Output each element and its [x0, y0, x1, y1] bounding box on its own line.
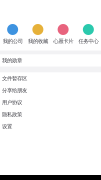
button[interactable]: 我的公司	[0, 24, 25, 45]
staticText: 我的收藏	[28, 38, 48, 45]
staticText: 心愿卡片	[53, 38, 73, 45]
staticText: 分享给朋友	[2, 87, 27, 94]
staticText: 我的勋章	[2, 57, 22, 64]
button[interactable]: 用户协议	[0, 97, 101, 109]
staticText: 文件暂存区	[2, 75, 27, 82]
button[interactable]: 任务中心	[76, 24, 101, 45]
staticText: 我的公司	[3, 38, 23, 45]
staticText: 用户协议	[2, 99, 22, 106]
button[interactable]: 我的勋章	[0, 55, 101, 67]
button[interactable]: 心愿卡片	[50, 24, 76, 45]
button[interactable]: 隐私政策	[0, 109, 101, 121]
staticText: 任务中心	[78, 38, 98, 45]
button[interactable]: 分享给朋友	[0, 85, 101, 97]
button[interactable]: 文件暂存区	[0, 73, 101, 85]
button[interactable]: 我的收藏	[25, 24, 50, 45]
staticText: 隐私政策	[2, 111, 22, 118]
staticText: 设置	[2, 123, 12, 130]
